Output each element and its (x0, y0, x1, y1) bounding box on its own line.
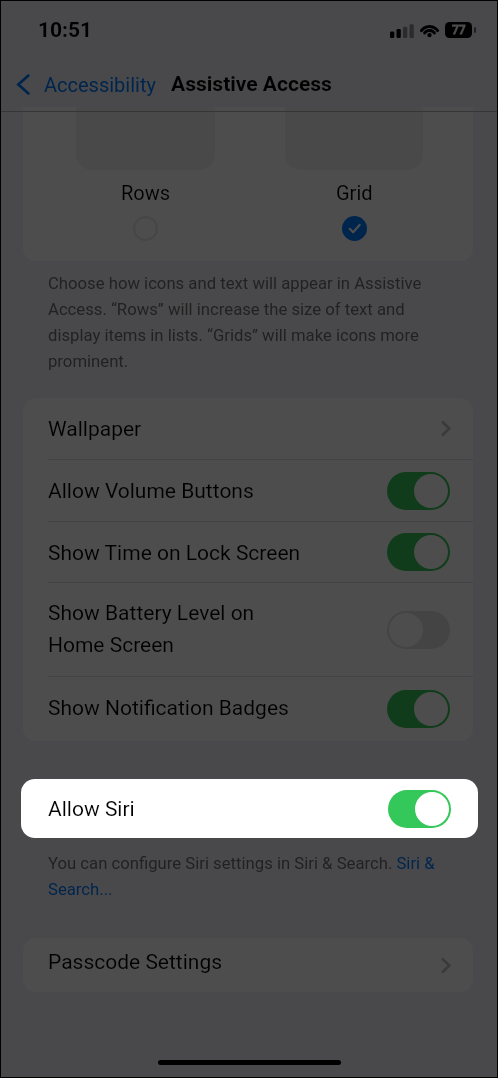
staticText: Allow Siri (48, 797, 135, 822)
button[interactable]: Show Battery Level on Home Screen (23, 583, 473, 676)
staticText: Grid (336, 181, 373, 204)
staticText: Rows (121, 181, 171, 204)
button[interactable]: Show Notification Badges (23, 677, 473, 741)
button[interactable]: Switch off (387, 611, 450, 649)
staticText: 77 (452, 23, 466, 37)
button[interactable]: Switch on (387, 472, 450, 510)
staticText: Show Battery Level on Home Screen (48, 601, 255, 657)
staticText: You can configure Siri settings in Siri … (48, 854, 438, 900)
staticText: Show Time on Lock Screen (48, 541, 301, 566)
button[interactable]: Grid selected (342, 216, 367, 241)
staticText: Assistive Access (171, 72, 332, 97)
button[interactable]: Passcode Settings (23, 938, 473, 992)
button[interactable]: Switch on (387, 690, 450, 728)
button[interactable]: Allow Siri (21, 779, 478, 838)
button[interactable]: Show Time on Lock Screen (23, 522, 473, 582)
staticText: Choose how icons and text will appear in… (48, 274, 432, 372)
button[interactable]: Switch on (388, 790, 451, 828)
staticText: Allow Volume Buttons (48, 479, 254, 504)
staticText: Passcode Settings (48, 950, 223, 975)
staticText: Allow Siri (48, 797, 135, 822)
staticText: Show Notification Badges (48, 696, 289, 721)
staticText: Accessibility (44, 73, 156, 96)
button[interactable]: Switch on (388, 790, 451, 828)
button[interactable]: Accessibility (0, 60, 166, 104)
staticText: 10:51 (38, 18, 93, 43)
staticText: Wallpaper (48, 417, 142, 442)
button[interactable]: Allow Siri (21, 779, 478, 838)
button[interactable]: Allow Volume Buttons (23, 460, 473, 521)
button[interactable]: Switch on (387, 533, 450, 571)
button[interactable]: Wallpaper (23, 398, 473, 459)
